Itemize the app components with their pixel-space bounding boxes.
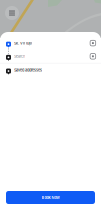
staticText: Book Now [41, 195, 59, 200]
staticText: Saved addresses [14, 68, 42, 72]
button[interactable]: Menu [5, 6, 19, 20]
button[interactable]: Str. Virtuții [0, 36, 101, 50]
staticText: Str. Virtuții [14, 41, 32, 45]
staticText: Search [14, 54, 25, 59]
button[interactable]: Search [0, 50, 101, 63]
button[interactable]: Book Now [6, 191, 95, 204]
button[interactable]: Saved addresses [0, 63, 101, 77]
